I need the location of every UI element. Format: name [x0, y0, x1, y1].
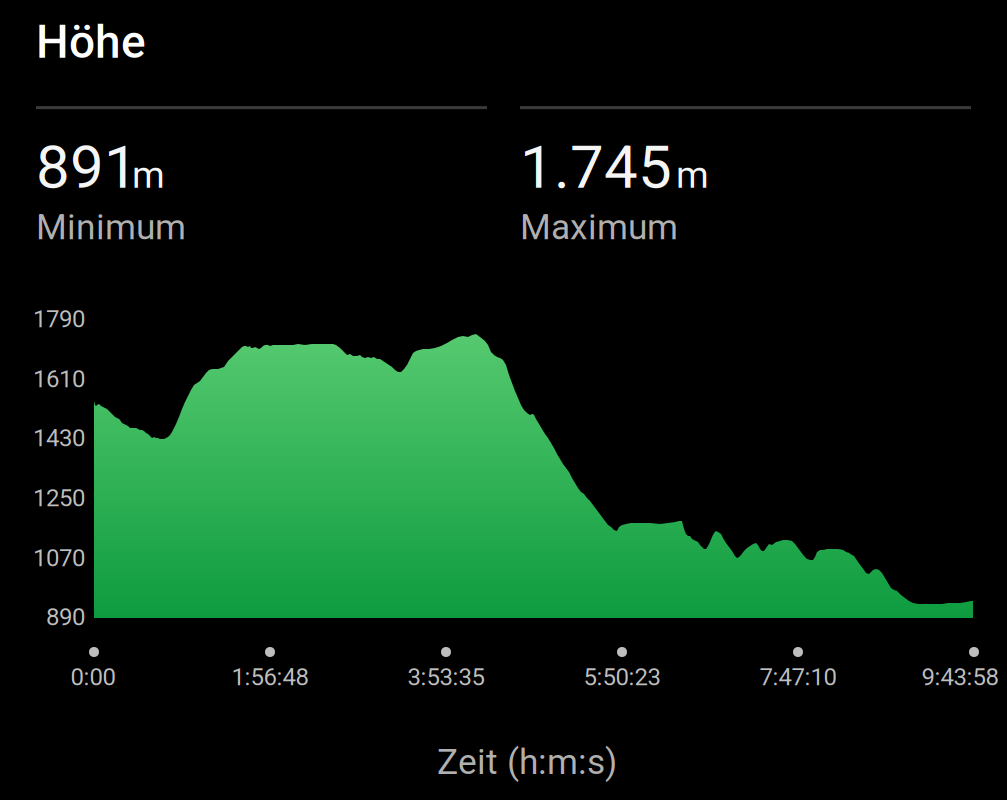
- staticText: 0:00: [70, 663, 115, 691]
- staticText: 3:53:35: [407, 663, 484, 691]
- staticText: Maximum: [520, 206, 678, 248]
- staticText: 1070: [33, 544, 85, 572]
- staticText: 1.745: [520, 132, 672, 202]
- staticText: 1:56:48: [231, 663, 308, 691]
- staticText: 1250: [33, 484, 85, 512]
- staticText: Zeit (h:m:s): [437, 741, 617, 783]
- staticText: 1430: [33, 424, 85, 452]
- staticText: 891: [36, 132, 138, 202]
- button[interactable]: Höhenprofil: [94, 318, 973, 618]
- staticText: Minimum: [36, 206, 186, 248]
- staticText: 9:43:58: [921, 663, 998, 691]
- staticText: 7:47:10: [759, 663, 836, 691]
- staticText: m: [132, 153, 165, 197]
- staticText: 890: [46, 603, 85, 631]
- button[interactable]: 1.745: [520, 106, 971, 248]
- staticText: 1790: [33, 305, 85, 333]
- staticText: 5:50:23: [583, 663, 660, 691]
- staticText: m: [676, 153, 709, 197]
- staticText: 1610: [33, 365, 85, 393]
- staticText: Höhe: [36, 15, 146, 69]
- button[interactable]: 891: [36, 106, 487, 248]
